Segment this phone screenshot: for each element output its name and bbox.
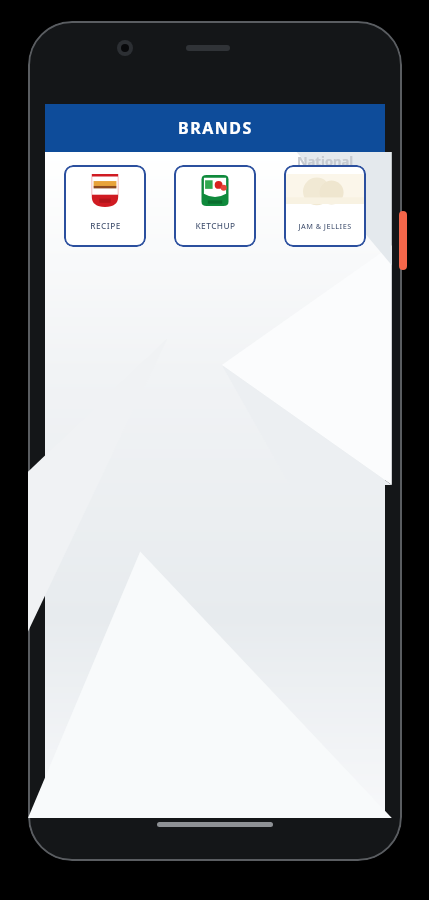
staticText: BRANDS (178, 117, 253, 139)
button[interactable]: Jam and jellies brand (284, 165, 366, 247)
staticText: RECIPE (90, 220, 121, 231)
button[interactable]: Recipe brand (64, 165, 146, 247)
button[interactable]: Ketchup brand (174, 165, 256, 247)
staticText: KETCHUP (195, 220, 236, 231)
staticText: JAM & JELLIES (298, 221, 352, 231)
staticText: National (297, 152, 354, 170)
